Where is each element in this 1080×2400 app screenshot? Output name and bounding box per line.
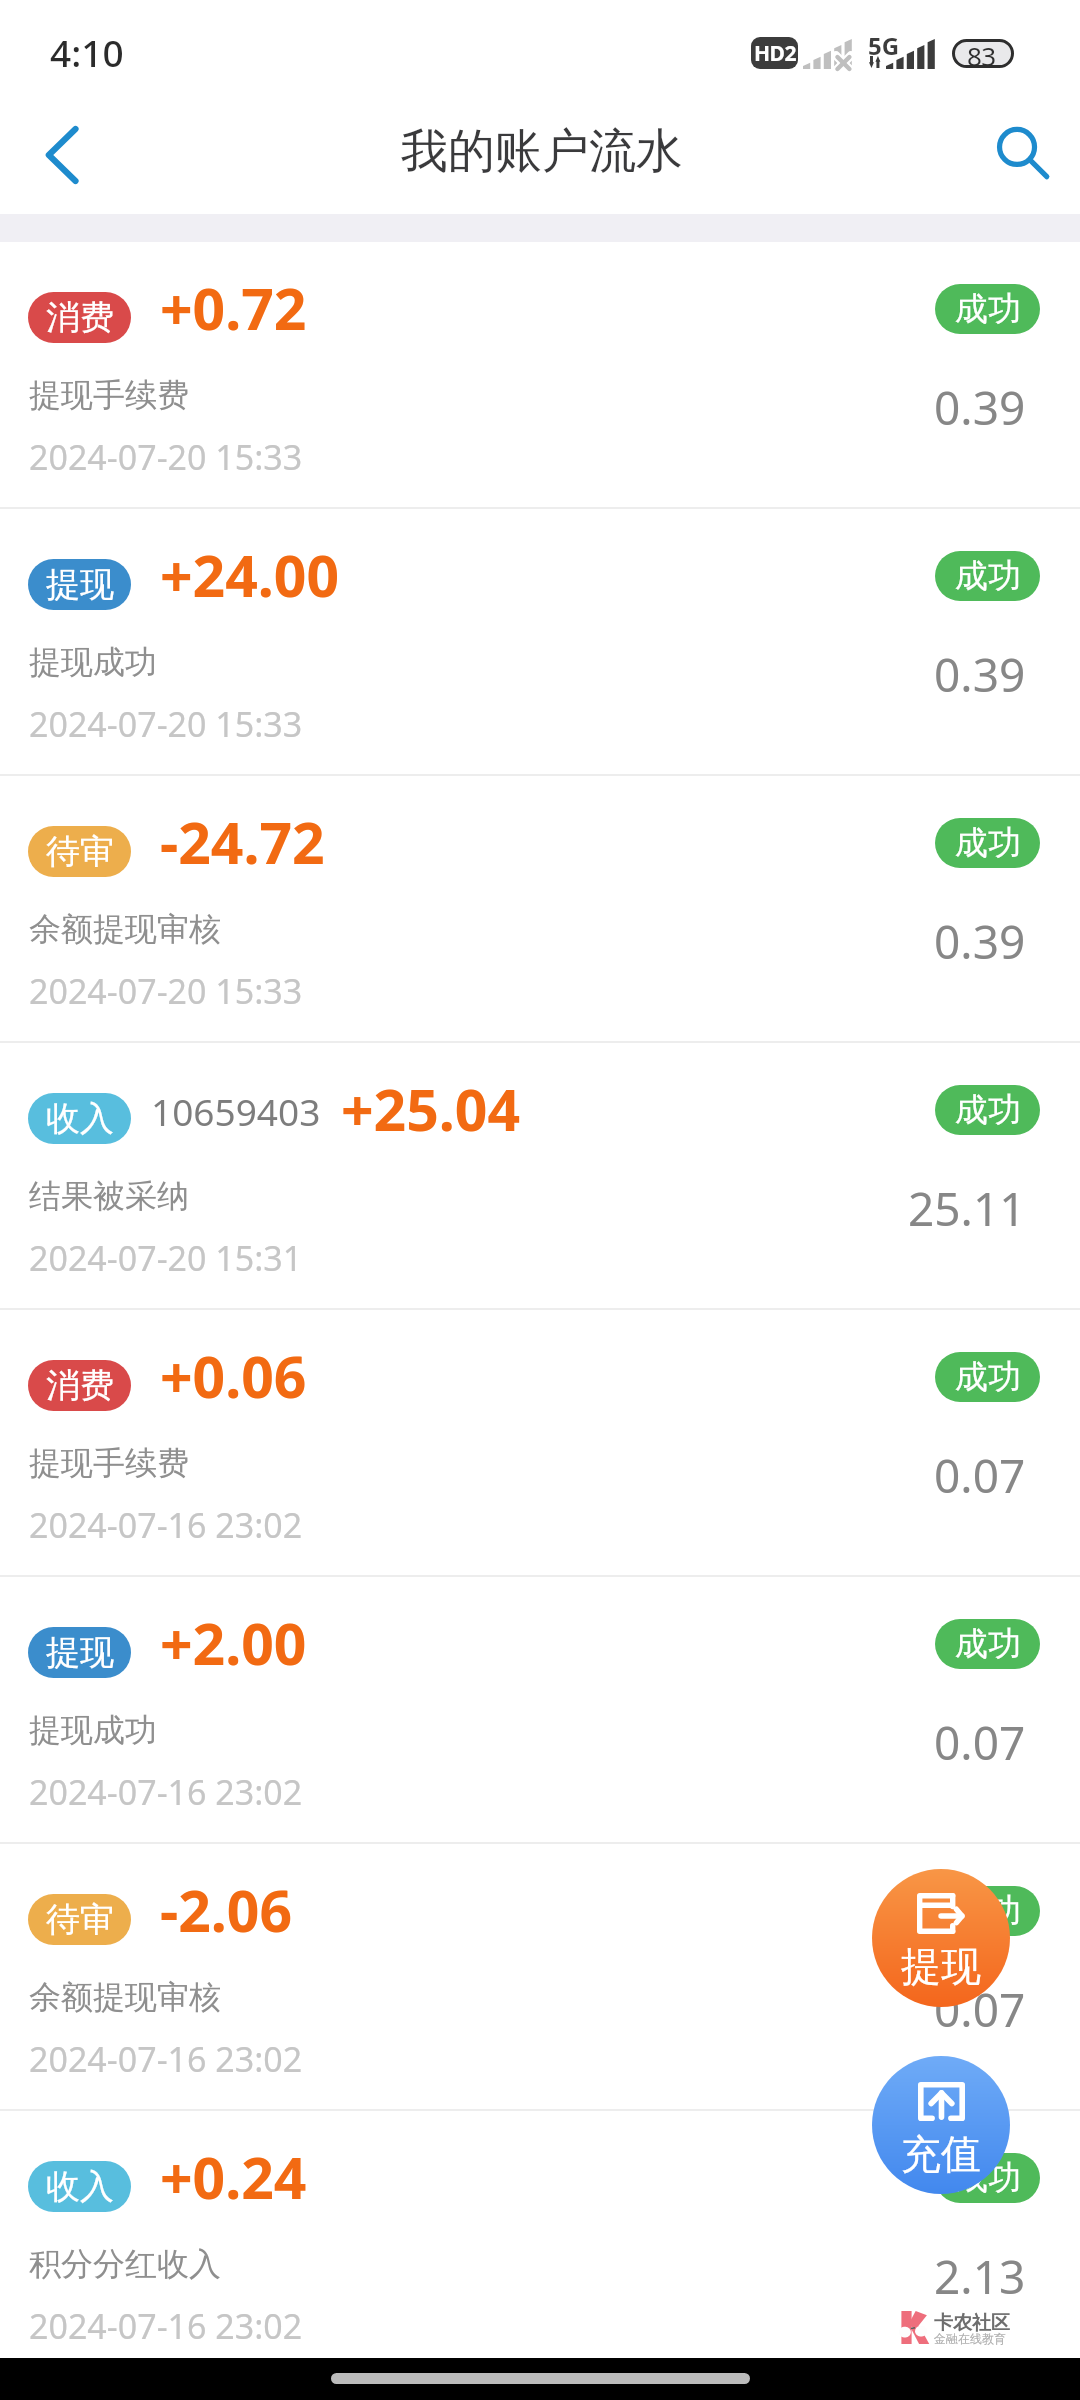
button[interactable]: 收入: [0, 2111, 1080, 2376]
staticText: 消费: [46, 296, 114, 339]
staticText: 待审: [46, 1898, 114, 1941]
button[interactable]: 待审: [0, 776, 1080, 1041]
staticText: 消费: [46, 1364, 114, 1407]
staticText: 提现手续费: [29, 375, 189, 415]
staticText: 2024-07-20 15:33: [29, 968, 303, 1014]
staticText: 2024-07-20 15:33: [29, 701, 303, 747]
staticText: 收入: [46, 1097, 114, 1140]
staticText: 0.39: [934, 643, 1026, 706]
staticText: 成功: [955, 1356, 1021, 1398]
staticText: 成功: [955, 822, 1021, 864]
staticText: 成功: [955, 555, 1021, 597]
staticText: 2024-07-16 23:02: [29, 2036, 303, 2082]
staticText: 0.07: [934, 1978, 1026, 2041]
staticText: 卡农社区: [934, 2311, 1010, 2335]
staticText: 0.39: [934, 376, 1026, 439]
button[interactable]: 消费: [0, 1310, 1080, 1575]
staticText: 2024-07-16 23:02: [29, 1769, 303, 1815]
staticText: 2024-07-16 23:02: [29, 2303, 303, 2349]
staticText: 2.13: [934, 2245, 1026, 2308]
staticText: 2024-07-16 23:02: [29, 1502, 303, 1548]
staticText: 4:10: [50, 27, 124, 77]
staticText: 成功: [955, 1089, 1021, 1131]
staticText: 25.11: [908, 1177, 1026, 1240]
staticText: 0.07: [934, 1444, 1026, 1507]
staticText: 收入: [46, 2165, 114, 2208]
staticText: +25.04: [341, 1070, 521, 1148]
staticText: HD2: [754, 39, 796, 68]
staticText: -2.06: [160, 1871, 293, 1949]
staticText: 提现手续费: [29, 1443, 189, 1483]
staticText: 2024-07-20 15:31: [29, 1235, 303, 1281]
staticText: 金融在线教育: [934, 2331, 1006, 2346]
staticText: -24.72: [160, 803, 325, 881]
button[interactable]: 充值: [872, 2056, 1010, 2194]
staticText: +0.24: [160, 2138, 307, 2216]
staticText: 2024-07-20 15:33: [29, 434, 303, 480]
staticText: 0.07: [934, 1711, 1026, 1774]
button[interactable]: 待审: [0, 1844, 1080, 2109]
staticText: 待审: [46, 830, 114, 873]
staticText: +24.00: [160, 536, 340, 614]
button[interactable]: 提现: [0, 1577, 1080, 1842]
staticText: +0.06: [160, 1337, 307, 1415]
button[interactable]: 收入: [0, 1043, 1080, 1308]
staticText: 83: [967, 38, 996, 67]
staticText: 充值: [901, 2129, 981, 2179]
staticText: 0.39: [934, 910, 1026, 973]
staticText: 5G: [868, 29, 900, 62]
staticText: 结果被采纳: [29, 1176, 189, 1216]
staticText: +0.72: [160, 269, 307, 347]
staticText: 10659403: [151, 1086, 321, 1136]
button[interactable]: 提现: [872, 1869, 1010, 2007]
staticText: +2.00: [160, 1604, 307, 1682]
staticText: 成功: [955, 1890, 1021, 1932]
staticText: 我的账户流水: [401, 122, 683, 181]
staticText: 提现: [46, 1631, 114, 1674]
staticText: 成功: [955, 1623, 1021, 1665]
staticText: 提现成功: [29, 642, 157, 682]
staticText: 提现: [901, 1941, 981, 1991]
button[interactable]: Search: [972, 105, 1072, 205]
staticText: 成功: [955, 2157, 1021, 2199]
button[interactable]: 消费: [0, 242, 1080, 507]
staticText: 提现成功: [29, 1710, 157, 1750]
staticText: 提现: [46, 563, 114, 606]
staticText: 积分分红收入: [29, 2244, 221, 2284]
button[interactable]: 提现: [0, 509, 1080, 774]
staticText: 余额提现审核: [29, 1977, 221, 2017]
staticText: 成功: [955, 288, 1021, 330]
staticText: 余额提现审核: [29, 909, 221, 949]
button[interactable]: Back: [12, 105, 112, 205]
